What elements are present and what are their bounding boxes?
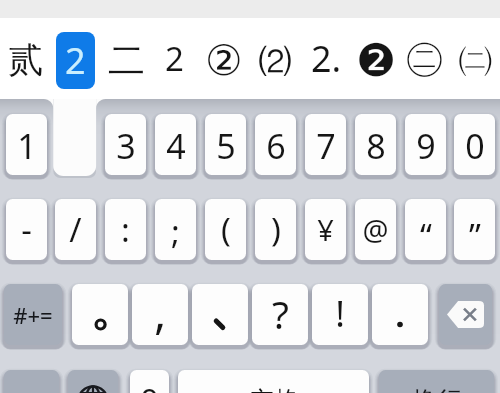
button[interactable]: 6 — [255, 114, 296, 175]
button[interactable]: 2. — [299, 18, 349, 99]
button[interactable]: ¥ — [305, 199, 346, 260]
button[interactable]: ? — [252, 284, 308, 345]
staticText: , — [154, 284, 167, 341]
button[interactable]: Backspace — [439, 284, 492, 345]
button[interactable]: 9 — [405, 114, 446, 175]
staticText: 1 — [17, 123, 37, 169]
staticText: 2 — [65, 36, 86, 85]
button[interactable]: 贰 — [0, 18, 50, 99]
staticText: 5 — [216, 123, 236, 169]
button[interactable]: 二 — [100, 18, 150, 99]
button[interactable]: ” — [454, 199, 495, 260]
staticText: 0 — [465, 123, 485, 169]
staticText: 9 — [416, 123, 436, 169]
staticText: ㈡ — [458, 37, 493, 81]
button[interactable]: ( — [205, 199, 246, 260]
button[interactable]: 0 — [130, 370, 169, 393]
button[interactable]: ; — [155, 199, 196, 260]
button[interactable]: 3 — [105, 114, 146, 175]
staticText: 贰 — [8, 38, 43, 82]
staticText: 4 — [166, 123, 186, 169]
button[interactable]: Comma — [132, 284, 188, 345]
staticText: ❷ — [356, 34, 397, 86]
button[interactable]: Switch input language — [68, 370, 118, 393]
button[interactable]: ! — [312, 284, 368, 345]
button[interactable]: “ — [405, 199, 446, 260]
staticText: 0 — [140, 378, 159, 393]
button[interactable]: #+= — [4, 284, 62, 345]
staticText: ⑵ — [259, 41, 291, 81]
button[interactable]: 换行 — [379, 370, 494, 393]
staticText: 8 — [366, 123, 386, 169]
staticText: : — [121, 207, 130, 252]
staticText: ; — [171, 209, 180, 254]
staticText: “ — [420, 213, 432, 258]
button[interactable]: 2 — [50, 18, 100, 99]
button[interactable]: : — [105, 199, 146, 260]
staticText: @ — [362, 210, 389, 249]
button[interactable]: Ideographic full stop — [72, 284, 128, 345]
staticText: 2 — [165, 36, 184, 81]
staticText: 7 — [316, 123, 336, 169]
button[interactable]: ❷ — [348, 18, 398, 99]
staticText: ! — [335, 289, 345, 338]
button[interactable]: 1 — [6, 114, 47, 175]
button[interactable]: 8 — [355, 114, 396, 175]
staticText: 2. — [311, 34, 342, 83]
staticText: - — [21, 207, 32, 252]
staticText: 二 — [108, 37, 145, 84]
button[interactable]: 空格 — [178, 370, 369, 393]
button[interactable]: ② — [199, 18, 249, 99]
button[interactable]: 2 — [149, 18, 199, 99]
button[interactable]: Ideographic comma — [192, 284, 248, 345]
staticText: 6 — [266, 123, 286, 169]
staticText: ㊁ — [405, 33, 444, 82]
staticText: 3 — [116, 123, 136, 169]
staticText: ) — [271, 207, 281, 252]
button[interactable]: - — [6, 199, 47, 260]
staticText: ” — [469, 213, 481, 258]
button[interactable]: ㈡ — [448, 18, 498, 99]
staticText: 空格 — [249, 385, 299, 393]
staticText: 换行 — [412, 385, 462, 393]
staticText: / — [69, 207, 82, 252]
button[interactable]: ⑵ — [249, 18, 299, 99]
button[interactable]: 5 — [205, 114, 246, 175]
button[interactable]: / — [55, 199, 96, 260]
staticText: ¥ — [317, 210, 334, 249]
button[interactable]: 0 — [454, 114, 495, 175]
button[interactable]: 4 — [155, 114, 196, 175]
staticText: ② — [205, 36, 243, 85]
button[interactable]: ) — [255, 199, 296, 260]
staticText: ( — [221, 207, 231, 252]
button[interactable]: @ — [355, 199, 396, 260]
button[interactable]: ㊁ — [398, 18, 448, 99]
button[interactable]: Period — [372, 284, 428, 345]
staticText: ? — [272, 287, 289, 340]
button[interactable]: ABC — [4, 370, 59, 393]
button[interactable]: 7 — [305, 114, 346, 175]
staticText: #+= — [13, 300, 53, 330]
